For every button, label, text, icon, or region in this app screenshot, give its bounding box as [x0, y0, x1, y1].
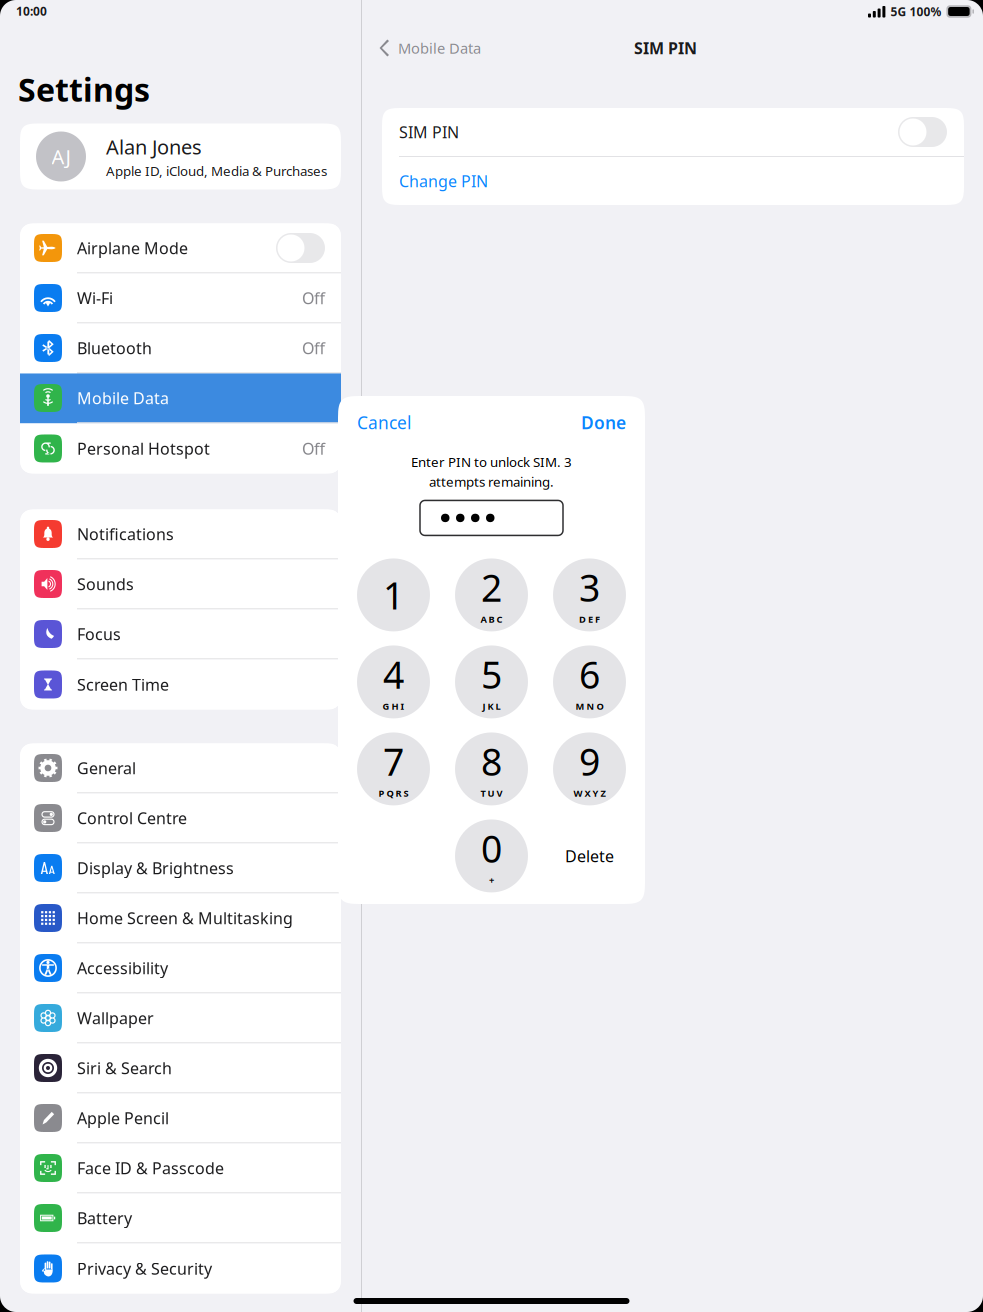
button[interactable]: Privacy & Security: [20, 1243, 341, 1293]
staticText: M N O: [575, 700, 603, 712]
staticText: Change PIN: [399, 170, 488, 192]
staticText: 5G 100%: [890, 3, 941, 19]
staticText: 4: [383, 649, 404, 699]
button[interactable]: Face ID & Passcode: [20, 1143, 341, 1193]
button[interactable]: 5: [455, 645, 528, 718]
button[interactable]: Bluetooth: [20, 323, 341, 373]
staticText: G H I: [382, 700, 404, 712]
button[interactable]: Display & Brightness: [20, 843, 341, 893]
button[interactable]: 7: [357, 732, 430, 805]
staticText: Notifications: [77, 523, 174, 545]
button[interactable]: 9: [553, 732, 626, 805]
staticText: Airplane Mode: [77, 237, 188, 259]
staticText: Control Centre: [77, 807, 187, 829]
button[interactable]: Sounds: [20, 559, 341, 609]
staticText: T U V: [480, 787, 502, 799]
staticText: 7: [383, 736, 404, 786]
staticText: 6: [579, 649, 600, 699]
button[interactable]: 8: [455, 732, 528, 805]
staticText: SIM PIN: [634, 37, 697, 59]
staticText: +: [489, 874, 494, 886]
staticText: Delete: [565, 845, 614, 866]
staticText: Personal Hotspot: [77, 438, 210, 459]
staticText: SIM PIN: [399, 121, 459, 143]
button[interactable]: AJ: [0, 123, 341, 189]
button[interactable]: Done: [581, 411, 626, 434]
staticText: 9: [579, 736, 600, 786]
button[interactable]: General: [20, 743, 341, 793]
staticText: 0: [481, 823, 502, 873]
button[interactable]: Siri & Search: [20, 1043, 341, 1093]
staticText: D E F: [579, 613, 600, 625]
button[interactable]: Apple Pencil: [20, 1093, 341, 1143]
staticText: attempts remaining.: [429, 473, 554, 490]
staticText: Apple Pencil: [77, 1107, 169, 1129]
staticText: Privacy & Security: [77, 1258, 212, 1279]
staticText: Alan Jones: [106, 133, 202, 160]
staticText: Wi-Fi: [77, 287, 113, 309]
staticText: 3: [579, 562, 600, 612]
staticText: Mobile Data: [77, 387, 169, 409]
button[interactable]: Change PIN: [382, 157, 964, 205]
button[interactable]: 3: [553, 558, 626, 631]
staticText: Apple ID, iCloud, Media & Purchases: [106, 162, 327, 180]
button[interactable]: Airplane Mode: [20, 223, 341, 273]
button[interactable]: Delete: [553, 819, 626, 892]
button[interactable]: Cancel: [357, 411, 411, 434]
staticText: W X Y Z: [573, 787, 605, 799]
button[interactable]: Home Screen & Multitasking: [20, 893, 341, 943]
staticText: Settings: [18, 68, 150, 110]
button[interactable]: Battery: [20, 1193, 341, 1243]
button[interactable]: Personal Hotspot: [20, 423, 341, 473]
button[interactable]: 0: [455, 819, 528, 892]
staticText: Home Screen & Multitasking: [77, 907, 293, 929]
staticText: Face ID & Passcode: [77, 1157, 224, 1179]
staticText: Display & Brightness: [77, 857, 234, 879]
staticText: 8: [481, 736, 502, 786]
staticText: J K L: [482, 700, 500, 712]
button[interactable]: Wallpaper: [20, 993, 341, 1043]
staticText: Wallpaper: [77, 1007, 154, 1029]
staticText: General: [77, 757, 136, 779]
staticText: 1: [383, 570, 404, 620]
button[interactable]: Focus: [20, 609, 341, 659]
staticText: Battery: [77, 1207, 132, 1229]
staticText: 2: [481, 562, 502, 612]
staticText: Done: [581, 411, 626, 434]
button[interactable]: 6: [553, 645, 626, 718]
button[interactable]: Mobile Data: [20, 373, 341, 423]
staticText: Off: [302, 337, 325, 359]
button[interactable]: 2: [455, 558, 528, 631]
staticText: Screen Time: [77, 674, 169, 695]
staticText: Off: [302, 287, 325, 309]
staticText: AJ: [51, 143, 70, 170]
button[interactable]: Wi-Fi: [20, 273, 341, 323]
button[interactable]: Control Centre: [20, 793, 341, 843]
staticText: Enter PIN to unlock SIM. 3: [411, 453, 572, 471]
button[interactable]: Screen Time: [20, 659, 341, 709]
staticText: Off: [302, 438, 325, 459]
button[interactable]: Mobile Data: [362, 30, 481, 66]
staticText: 10:00: [16, 3, 47, 19]
staticText: Focus: [77, 623, 121, 645]
button[interactable]: Notifications: [20, 509, 341, 559]
staticText: Siri & Search: [77, 1057, 172, 1079]
staticText: Cancel: [357, 411, 411, 434]
staticText: Bluetooth: [77, 337, 152, 359]
staticText: A B C: [480, 613, 502, 625]
staticText: Mobile Data: [398, 38, 481, 58]
button[interactable]: 4: [357, 645, 430, 718]
button[interactable]: 1: [357, 558, 430, 631]
button[interactable]: Accessibility: [20, 943, 341, 993]
staticText: Sounds: [77, 573, 134, 595]
staticText: Accessibility: [77, 957, 168, 979]
staticText: 5: [481, 649, 502, 699]
staticText: P Q R S: [378, 787, 408, 799]
